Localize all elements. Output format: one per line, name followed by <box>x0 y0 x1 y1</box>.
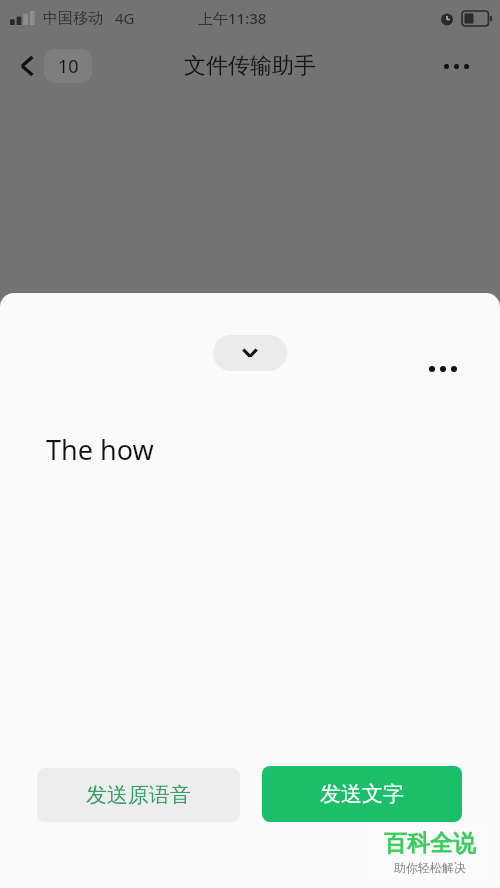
staticText: 发送文字 <box>320 781 404 807</box>
staticText: 百科全说 <box>384 829 476 858</box>
button[interactable]: More options <box>419 345 467 393</box>
button[interactable]: Back, 10 unread <box>18 49 92 83</box>
staticText: 4G <box>115 8 135 28</box>
staticText: 10 <box>58 54 79 79</box>
button[interactable]: More options <box>434 44 478 88</box>
staticText: 上午11:38 <box>198 8 267 28</box>
button[interactable]: Collapse <box>213 335 287 371</box>
staticText: The how <box>46 431 154 468</box>
staticText: 发送原语音 <box>86 782 191 808</box>
staticText: 助你轻松解决 <box>394 860 466 875</box>
staticText: 中国移动 <box>43 9 103 28</box>
button[interactable]: 发送原语音 <box>37 768 240 822</box>
button[interactable]: 发送文字 <box>262 766 462 822</box>
staticText: 文件传输助手 <box>184 52 316 80</box>
